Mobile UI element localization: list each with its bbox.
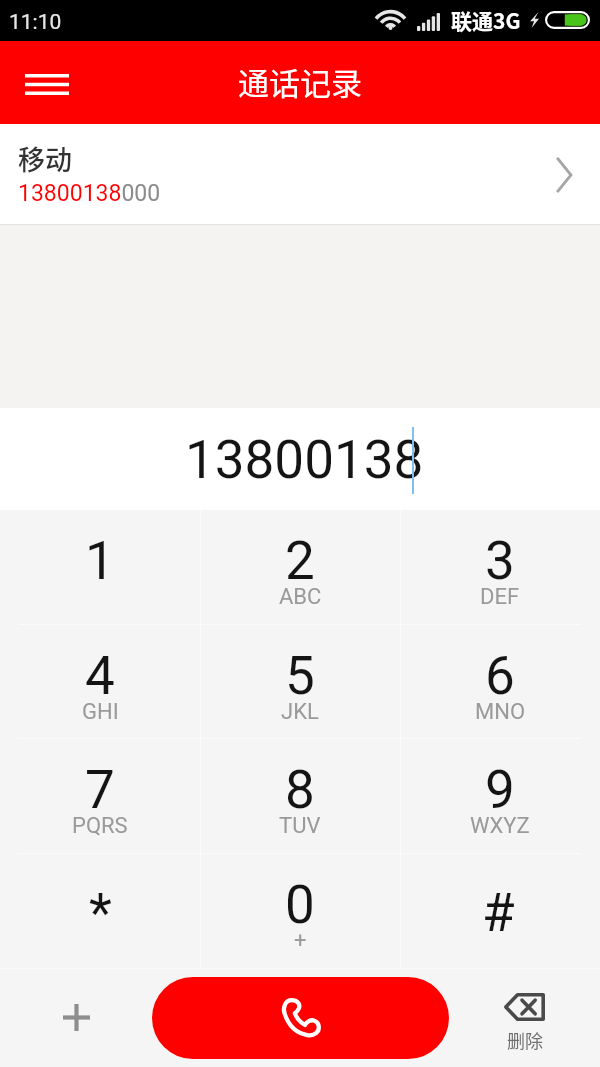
- staticText: 11:10: [9, 10, 62, 35]
- staticText: JKL: [281, 699, 319, 725]
- staticText: 13800138: [185, 429, 424, 491]
- button[interactable]: 8: [200, 739, 400, 854]
- staticText: 4: [85, 645, 115, 707]
- staticText: 7: [85, 759, 115, 821]
- staticText: TUV: [279, 813, 321, 839]
- staticText: 通话记录: [238, 59, 362, 104]
- button[interactable]: 9: [400, 739, 600, 854]
- button[interactable]: #: [400, 854, 600, 968]
- button[interactable]: Add contact: [0, 968, 152, 1067]
- staticText: ABC: [279, 584, 322, 610]
- button[interactable]: Call: [152, 977, 449, 1059]
- staticText: 1: [85, 530, 115, 592]
- staticText: 3: [485, 530, 515, 592]
- staticText: 13800138000: [18, 180, 161, 207]
- staticText: *: [89, 882, 112, 944]
- staticText: 删除: [507, 1027, 543, 1053]
- button[interactable]: 4: [0, 625, 200, 739]
- button[interactable]: 删除: [449, 968, 600, 1067]
- staticText: 6: [485, 645, 515, 707]
- staticText: +: [294, 928, 307, 954]
- staticText: GHI: [82, 699, 119, 725]
- staticText: 8: [285, 759, 315, 821]
- button[interactable]: 0: [200, 854, 400, 968]
- button[interactable]: 5: [200, 625, 400, 739]
- staticText: PQRS: [72, 813, 128, 839]
- button[interactable]: 3: [400, 510, 600, 625]
- staticText: WXYZ: [470, 813, 530, 839]
- button[interactable]: 1: [0, 510, 200, 625]
- staticText: 0: [285, 874, 315, 936]
- staticText: #: [482, 882, 515, 944]
- button[interactable]: 2: [200, 510, 400, 625]
- button[interactable]: *: [0, 854, 200, 968]
- staticText: 5: [285, 645, 315, 707]
- staticText: MNO: [475, 699, 526, 725]
- staticText: 移动: [18, 139, 72, 178]
- staticText: 联通3G: [451, 5, 521, 35]
- button[interactable]: Menu: [0, 41, 94, 124]
- button[interactable]: 6: [400, 625, 600, 739]
- button[interactable]: 7: [0, 739, 200, 854]
- staticText: DEF: [480, 584, 520, 610]
- button[interactable]: 移动: [0, 124, 600, 225]
- staticText: 9: [485, 759, 515, 821]
- staticText: 2: [285, 530, 315, 592]
